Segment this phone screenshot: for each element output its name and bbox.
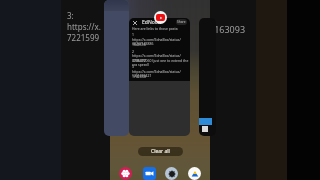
staticText: https://x.com/EdnaBox/status/1640596: [132, 37, 190, 47]
staticText: https://x.: [67, 21, 101, 32]
staticText: https://x.com/EdnaBox/status/1736497: [132, 53, 190, 63]
staticText: 4086372060 (just one to extend the: [132, 58, 189, 63]
button[interactable]: Drive: [188, 167, 201, 180]
staticText: Clear all: [151, 148, 170, 155]
button[interactable]: Settings: [165, 167, 178, 180]
staticText: era speed): [132, 62, 149, 67]
button[interactable]: Close: [131, 19, 138, 26]
button[interactable]: Close: [129, 18, 190, 136]
staticText: 3: [132, 64, 134, 69]
staticText: https://x.com/EdnaBox/status/1742654: [132, 69, 190, 79]
button[interactable]: [199, 18, 216, 136]
staticText: Share: [177, 20, 186, 24]
button[interactable]: Clear all: [138, 147, 183, 156]
button[interactable]: Photo editor: [119, 167, 132, 180]
staticText: 2: [132, 49, 134, 54]
staticText: 7221599: [67, 32, 100, 43]
staticText: EdNook: [142, 19, 161, 26]
button[interactable]: Share: [176, 19, 187, 25]
other: YouTube: [154, 11, 167, 24]
staticText: 3:: [67, 10, 74, 21]
staticText: 7163093: [209, 23, 246, 35]
staticText: 38747183886: [132, 41, 154, 46]
staticText: 1251996421: [132, 73, 152, 78]
button[interactable]: [104, 0, 129, 136]
staticText: Here are links to those posts:: [132, 26, 179, 31]
button[interactable]: Meet: [143, 167, 156, 180]
staticText: 1: [132, 32, 134, 37]
